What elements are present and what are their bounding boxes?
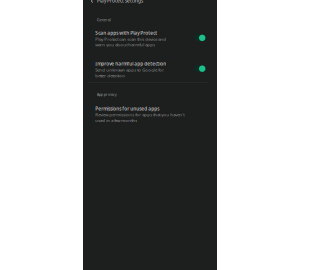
button[interactable]: Scan apps with Play Protect — [83, 30, 217, 48]
staticText: Play Protect can scan this device and — [95, 36, 166, 42]
staticText: Improve harmful app detection — [95, 61, 166, 67]
staticText: Permissions for unused apps — [95, 105, 159, 112]
staticText: Play Protect settings — [97, 0, 143, 4]
staticText: used in a few months — [95, 118, 137, 123]
button[interactable]: Improve harmful app detection — [83, 61, 217, 78]
button[interactable]: Permissions for unused apps — [83, 105, 217, 123]
staticText: better detection — [95, 73, 125, 78]
staticText: Scan apps with Play Protect — [95, 30, 157, 36]
staticText: warn you about harmful apps — [95, 42, 155, 48]
staticText: ‹ — [90, 0, 93, 5]
staticText: Review permissions for apps that you hav… — [95, 112, 184, 117]
staticText: App privacy — [97, 92, 117, 97]
staticText: Send unknown apps to Google for — [95, 67, 164, 73]
staticText: General — [97, 17, 111, 22]
button[interactable]: Back — [87, 0, 97, 5]
